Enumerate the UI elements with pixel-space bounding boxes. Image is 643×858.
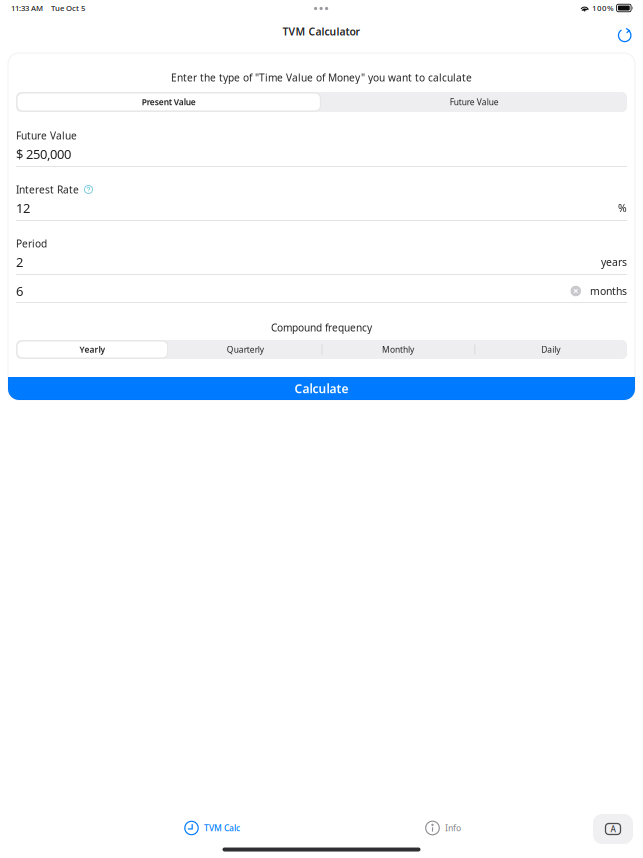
staticText: Info <box>445 822 461 834</box>
button[interactable]: Quarterly <box>169 340 322 359</box>
staticText: 12 <box>16 199 30 217</box>
button[interactable]: Calculate <box>8 377 635 400</box>
staticText: Tue Oct 5 <box>51 3 85 13</box>
staticText: years <box>601 255 627 269</box>
staticText: Present Value <box>142 96 196 108</box>
staticText: Daily <box>541 344 560 355</box>
staticText: Calculate <box>294 380 348 397</box>
staticText: % <box>618 201 627 215</box>
staticText: TVM Calculator <box>282 24 360 39</box>
button[interactable]: TVM Calc <box>184 815 240 841</box>
staticText: $ <box>16 145 23 163</box>
staticText: months <box>590 284 627 298</box>
staticText: Interest Rate <box>16 183 79 196</box>
staticText: Period <box>16 237 47 250</box>
button[interactable]: Monthly <box>321 340 474 359</box>
staticText: Future Value <box>16 129 77 142</box>
button[interactable]: Clear <box>570 286 581 296</box>
staticText: TVM Calc <box>204 822 240 834</box>
button[interactable]: Info <box>425 815 461 841</box>
button[interactable]: Yearly <box>16 340 169 359</box>
button[interactable]: Reset <box>607 16 643 53</box>
button[interactable]: Present Value <box>16 92 321 112</box>
staticText: 100% <box>592 3 614 13</box>
button[interactable]: What is Interest Rate? <box>83 184 94 195</box>
staticText: Monthly <box>382 344 414 355</box>
staticText: 11:33 AM <box>11 3 43 13</box>
button[interactable]: Future Value <box>321 92 627 112</box>
button[interactable]: Daily <box>474 340 627 359</box>
staticText: 2 <box>16 253 23 271</box>
staticText: Compound frequency <box>271 321 372 334</box>
staticText: Quarterly <box>227 344 264 355</box>
staticText: 6 <box>16 282 23 300</box>
staticText: A <box>610 823 615 835</box>
staticText: Future Value <box>450 96 499 108</box>
button[interactable]: Dismiss keyboard <box>593 814 633 844</box>
staticText: Enter the type of "Time Value of Money" … <box>171 71 472 84</box>
staticText: Yearly <box>79 344 105 355</box>
staticText: 250,000 <box>26 145 71 163</box>
